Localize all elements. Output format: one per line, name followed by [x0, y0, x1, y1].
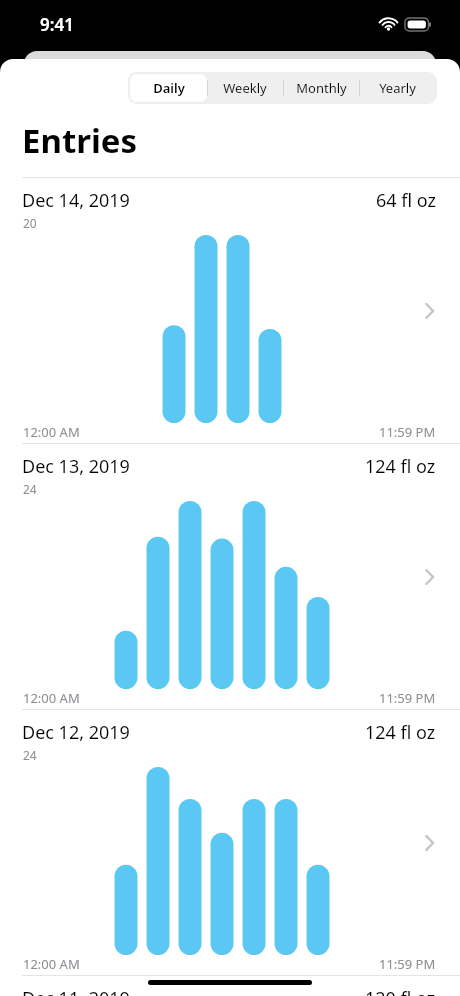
staticText: 124 fl oz — [365, 720, 436, 745]
staticText: Daily — [153, 79, 185, 97]
staticText: 120 fl oz — [365, 986, 436, 996]
staticText: Monthly — [296, 79, 347, 97]
staticText: Dec 11, 2019 — [22, 986, 130, 996]
other: Open entry details — [418, 566, 440, 588]
staticText: Dec 12, 2019 — [22, 720, 130, 745]
button[interactable]: Dec 14, 2019 — [0, 177, 460, 443]
staticText: 124 fl oz — [365, 454, 436, 479]
staticText: 11:59 PM — [379, 423, 436, 441]
staticText: 11:59 PM — [379, 689, 436, 707]
staticText: 11:59 PM — [379, 955, 436, 973]
staticText: Entries — [22, 118, 138, 163]
button[interactable]: Monthly — [283, 74, 359, 102]
staticText: 12:00 AM — [23, 423, 80, 441]
other: Open entry details — [418, 832, 440, 854]
staticText: Yearly — [379, 79, 416, 97]
staticText: 24 — [23, 747, 37, 763]
button[interactable]: Yearly — [359, 74, 435, 102]
staticText: 12:00 AM — [23, 689, 80, 707]
staticText: Weekly — [223, 79, 267, 97]
staticText: 24 — [23, 481, 37, 497]
button[interactable]: Dec 13, 2019 — [0, 443, 460, 709]
staticText: 12:00 AM — [23, 955, 80, 973]
staticText: 20 — [23, 215, 37, 231]
button[interactable]: Dec 12, 2019 — [0, 709, 460, 975]
button[interactable]: Dec 11, 2019 — [0, 975, 460, 996]
staticText: Dec 14, 2019 — [22, 188, 130, 213]
staticText: 9:41 — [40, 13, 74, 36]
button[interactable]: Weekly — [207, 74, 283, 102]
staticText: Dec 13, 2019 — [22, 454, 130, 479]
other: Open entry details — [418, 300, 440, 322]
staticText: 64 fl oz — [376, 188, 436, 213]
button[interactable]: Daily — [130, 74, 207, 102]
